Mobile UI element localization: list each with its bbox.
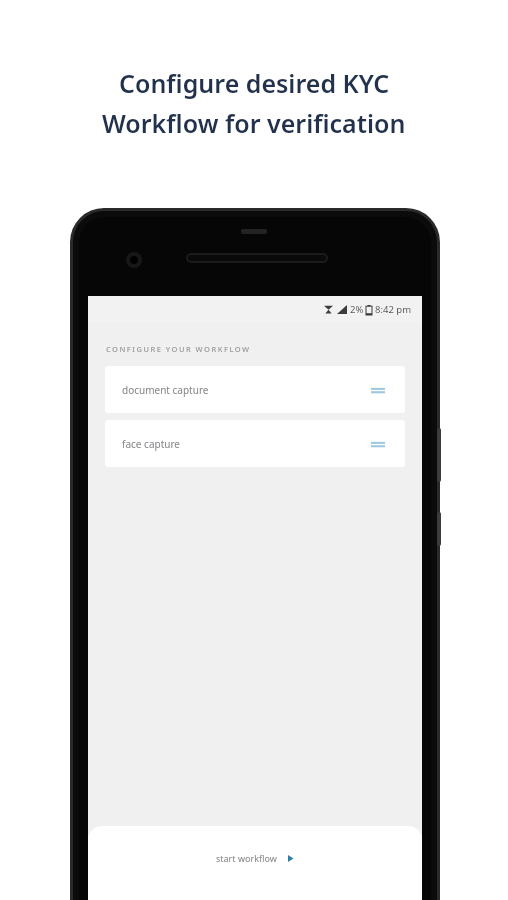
button[interactable]: face capture — [105, 420, 405, 467]
button[interactable]: start workflow — [199, 845, 311, 871]
button[interactable]: document capture — [105, 366, 405, 413]
staticText: document capture — [122, 383, 209, 397]
button[interactable]: Reorder face capture — [369, 437, 387, 451]
staticText: 8:42 pm — [375, 303, 412, 316]
staticText: Configure desired KYC — [119, 66, 390, 100]
staticText: 2% — [350, 303, 364, 316]
staticText: CONFIGURE YOUR WORKFLOW — [106, 344, 251, 354]
staticText: Workflow for verification — [102, 106, 406, 140]
staticText: start workflow — [216, 852, 277, 864]
button[interactable]: Reorder document capture — [369, 383, 387, 397]
staticText: face capture — [122, 437, 181, 451]
